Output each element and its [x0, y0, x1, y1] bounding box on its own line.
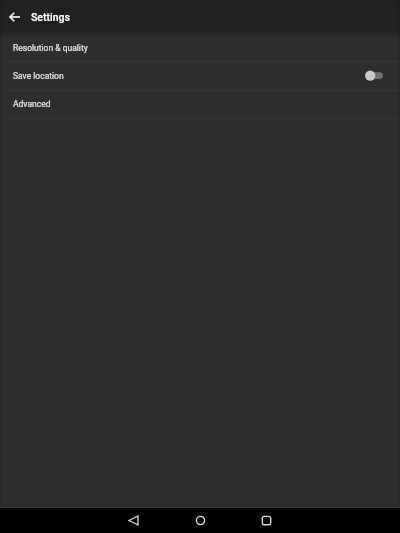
button[interactable]: Save location	[361, 69, 383, 83]
staticText: Advanced	[13, 99, 51, 109]
button[interactable]: Back	[121, 508, 146, 533]
staticText: Save location	[13, 71, 64, 81]
staticText: Resolution & quality	[13, 43, 88, 53]
button[interactable]: Navigate up	[0, 2, 30, 32]
button[interactable]: Home	[188, 508, 213, 533]
button[interactable]: Advanced	[0, 91, 400, 118]
button[interactable]: Save location	[0, 62, 400, 90]
button[interactable]: Recent apps	[254, 508, 279, 533]
button[interactable]: Resolution & quality	[0, 33, 400, 61]
staticText: Settings	[31, 11, 70, 23]
